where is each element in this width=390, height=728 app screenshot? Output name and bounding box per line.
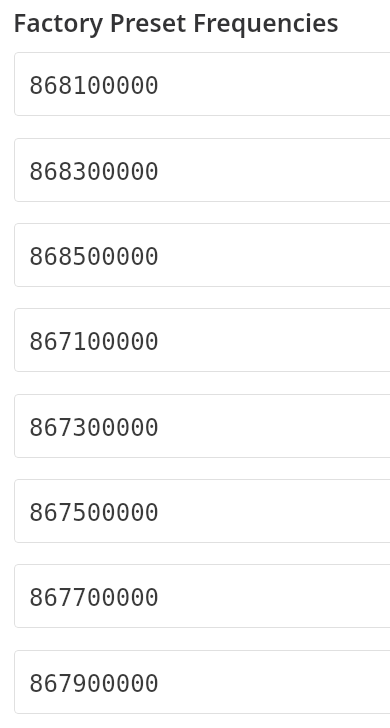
staticText: 867900000 <box>29 670 160 698</box>
button[interactable]: 868500000 <box>14 223 390 287</box>
button[interactable]: 867500000 <box>14 479 390 543</box>
staticText: 868100000 <box>29 72 160 100</box>
staticText: 868300000 <box>29 158 160 186</box>
staticText: 867700000 <box>29 584 160 612</box>
button[interactable]: 867700000 <box>14 564 390 628</box>
button[interactable]: 868100000 <box>14 52 390 116</box>
staticText: 867100000 <box>29 328 160 356</box>
staticText: 867300000 <box>29 414 160 442</box>
button[interactable]: 868300000 <box>14 138 390 202</box>
button[interactable]: 867300000 <box>14 394 390 458</box>
staticText: 867500000 <box>29 499 160 527</box>
button[interactable]: 867900000 <box>14 650 390 714</box>
staticText: 868500000 <box>29 243 160 271</box>
button[interactable]: 867100000 <box>14 308 390 372</box>
staticText: Factory Preset Frequencies <box>13 5 339 39</box>
